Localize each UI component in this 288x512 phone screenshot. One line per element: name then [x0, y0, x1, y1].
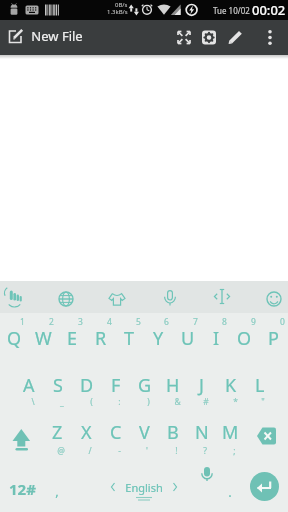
staticText: X: [81, 420, 92, 445]
button[interactable]: M: [216, 410, 245, 454]
staticText: 4: [107, 316, 112, 328]
staticText: ': [146, 445, 148, 457]
staticText: 6: [164, 316, 169, 328]
button[interactable]: V: [130, 410, 159, 454]
button[interactable]: [151, 275, 189, 313]
button[interactable]: [4, 420, 40, 460]
staticText: 0: [280, 316, 285, 328]
button[interactable]: [257, 24, 284, 51]
staticText: V: [139, 420, 150, 445]
button[interactable]: A: [14, 363, 43, 407]
button[interactable]: W: [29, 313, 58, 363]
button[interactable]: [255, 275, 288, 313]
button[interactable]: Q: [0, 313, 29, 363]
button[interactable]: D: [72, 363, 101, 407]
staticText: J: [199, 373, 204, 398]
button[interactable]: [100, 471, 188, 507]
button[interactable]: Y: [144, 313, 173, 363]
staticText: L: [255, 373, 265, 398]
staticText: 7: [193, 316, 198, 328]
button[interactable]: S: [43, 363, 72, 407]
staticText: ): [147, 396, 150, 408]
staticText: /: [88, 445, 92, 457]
staticText: ?: [203, 445, 207, 457]
button[interactable]: F: [101, 363, 130, 407]
staticText: 1.3kB/s: [107, 8, 128, 16]
button[interactable]: R: [86, 313, 115, 363]
staticText: S: [53, 373, 63, 398]
staticText: #: [203, 396, 209, 408]
staticText: English: [125, 480, 163, 495]
button[interactable]: P: [259, 313, 288, 363]
staticText: E: [67, 326, 78, 351]
staticText: &: [174, 396, 181, 408]
staticText: U: [181, 326, 195, 351]
staticText: ;: [233, 445, 236, 457]
button[interactable]: 12#: [2, 471, 42, 507]
button[interactable]: [196, 24, 223, 51]
button[interactable]: T: [115, 313, 144, 363]
staticText: @: [57, 445, 65, 457]
button[interactable]: J: [187, 363, 216, 407]
button[interactable]: [248, 420, 284, 460]
staticText: *: [233, 396, 238, 408]
staticText: Q: [7, 326, 22, 351]
button[interactable]: N: [187, 410, 216, 454]
staticText: G: [138, 373, 152, 398]
staticText: O: [237, 326, 252, 351]
button[interactable]: Z: [43, 410, 72, 454]
staticText: :: [118, 396, 121, 408]
staticText: C: [110, 420, 122, 445]
staticText: 00:02: [252, 1, 286, 19]
button[interactable]: L: [245, 363, 274, 407]
button[interactable]: [4, 24, 31, 51]
staticText: 12#: [9, 479, 36, 499]
staticText: _: [60, 396, 64, 408]
staticText: !: [175, 445, 178, 457]
staticText: 5: [136, 316, 141, 328]
staticText: M: [222, 420, 239, 445]
button[interactable]: [98, 275, 136, 313]
button[interactable]: [171, 24, 198, 51]
staticText: (: [90, 396, 93, 408]
staticText: -: [118, 445, 121, 457]
button[interactable]: K: [216, 363, 245, 407]
staticText: Tue 10/02: [213, 5, 250, 16]
staticText: N: [195, 420, 209, 445]
button[interactable]: [222, 24, 249, 51]
staticText: 3: [78, 316, 83, 328]
staticText: H: [166, 373, 180, 398]
staticText: 2: [49, 316, 54, 328]
staticText: 9: [251, 316, 256, 328]
staticText: 0B/s: [115, 1, 128, 9]
button[interactable]: G: [130, 363, 159, 407]
button[interactable]: C: [101, 410, 130, 454]
staticText: K: [225, 373, 237, 398]
staticText: ": [261, 396, 265, 408]
staticText: 8: [222, 316, 227, 328]
button[interactable]: B: [158, 410, 187, 454]
staticText: T: [124, 326, 135, 351]
staticText: A: [23, 373, 35, 398]
staticText: P: [268, 326, 279, 351]
staticText: W: [35, 326, 52, 351]
staticText: R: [95, 326, 107, 351]
button[interactable]: H: [158, 363, 187, 407]
staticText: .: [228, 483, 232, 501]
button[interactable]: [250, 472, 279, 501]
button[interactable]: O: [230, 313, 259, 363]
button[interactable]: [47, 275, 85, 313]
staticText: B: [167, 420, 179, 445]
staticText: D: [80, 373, 94, 398]
staticText: 1: [20, 316, 25, 328]
staticText: New File: [31, 27, 83, 45]
button[interactable]: I: [202, 313, 231, 363]
staticText: \: [31, 396, 35, 408]
staticText: Y: [153, 326, 164, 351]
button[interactable]: X: [72, 410, 101, 454]
button[interactable]: U: [173, 313, 202, 363]
staticText: F: [111, 373, 121, 398]
button[interactable]: [203, 275, 241, 313]
button[interactable]: E: [58, 313, 87, 363]
button[interactable]: [0, 275, 38, 313]
